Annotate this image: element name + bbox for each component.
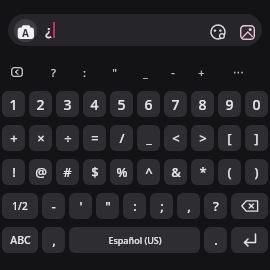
- button[interactable]: ,: [42, 227, 65, 253]
- button[interactable]: .: [204, 227, 227, 253]
- staticText: <: [172, 129, 180, 147]
- staticText: 6: [144, 95, 153, 114]
- button[interactable]: (: [218, 159, 241, 185]
- staticText: 1: [9, 95, 18, 114]
- staticText: 9: [225, 95, 234, 114]
- staticText: A: [22, 26, 29, 40]
- button[interactable]: 2: [29, 91, 52, 117]
- button[interactable]: ": [104, 59, 124, 85]
- button[interactable]: :: [123, 193, 146, 219]
- button[interactable]: 0: [245, 91, 268, 117]
- staticText: ^: [145, 163, 153, 181]
- button[interactable]: 7: [164, 91, 187, 117]
- button[interactable]: :: [74, 59, 94, 85]
- button[interactable]: A: [8, 14, 262, 46]
- button[interactable]: [: [218, 125, 241, 151]
- staticText: &: [171, 163, 181, 181]
- staticText: :: [83, 65, 86, 80]
- staticText: ": [112, 65, 117, 80]
- staticText: ⋯: [233, 66, 244, 79]
- button[interactable]: /: [110, 125, 133, 151]
- button[interactable]: ': [69, 193, 92, 219]
- button[interactable]: ?: [204, 193, 227, 219]
- button[interactable]: [210, 24, 226, 40]
- button[interactable]: _: [137, 125, 160, 151]
- staticText: =: [91, 129, 99, 147]
- staticText: ]: [254, 129, 259, 147]
- button[interactable]: 1/2: [2, 193, 38, 219]
- staticText: 7: [171, 95, 180, 114]
- button[interactable]: !: [2, 159, 25, 185]
- button[interactable]: &: [164, 159, 187, 185]
- button[interactable]: #: [56, 159, 79, 185]
- staticText: >: [199, 129, 207, 147]
- button[interactable]: [240, 25, 255, 40]
- staticText: 4: [90, 95, 99, 114]
- staticText: ,: [187, 197, 191, 215]
- button[interactable]: ;: [150, 193, 173, 219]
- button[interactable]: 9: [218, 91, 241, 117]
- button[interactable]: ,: [177, 193, 200, 219]
- button[interactable]: *: [191, 159, 214, 185]
- staticText: +: [198, 65, 205, 80]
- button[interactable]: [231, 193, 268, 219]
- button[interactable]: [11, 67, 23, 77]
- staticText: ×: [37, 129, 45, 147]
- button[interactable]: ): [245, 159, 268, 185]
- staticText: /: [119, 129, 125, 147]
- staticText: 1/2: [12, 199, 28, 213]
- staticText: :: [133, 197, 137, 215]
- staticText: 8: [198, 95, 207, 114]
- staticText: @: [35, 163, 47, 181]
- button[interactable]: +: [2, 125, 25, 151]
- button[interactable]: ×: [29, 125, 52, 151]
- staticText: 5: [117, 95, 126, 114]
- button[interactable]: -: [163, 59, 183, 85]
- button[interactable]: 8: [191, 91, 214, 117]
- button[interactable]: ": [96, 193, 119, 219]
- staticText: 2: [36, 95, 45, 114]
- staticText: *: [199, 163, 207, 181]
- button[interactable]: ]: [245, 125, 268, 151]
- button[interactable]: -: [42, 193, 65, 219]
- button[interactable]: 6: [137, 91, 160, 117]
- staticText: _: [143, 65, 148, 80]
- staticText: 3: [63, 95, 72, 114]
- staticText: ¿: [45, 21, 52, 40]
- staticText: ': [79, 197, 83, 215]
- button[interactable]: _: [135, 59, 155, 85]
- button[interactable]: ?: [43, 59, 63, 85]
- staticText: +: [10, 129, 18, 147]
- button[interactable]: Español (US): [69, 227, 200, 253]
- staticText: ABC: [10, 233, 31, 247]
- staticText: -: [171, 65, 175, 80]
- staticText: 0: [252, 95, 261, 114]
- staticText: -: [51, 197, 56, 215]
- staticText: .: [214, 231, 218, 249]
- staticText: $: [91, 163, 99, 181]
- button[interactable]: [231, 227, 268, 253]
- staticText: #: [63, 163, 72, 181]
- button[interactable]: $: [83, 159, 106, 185]
- staticText: ÷: [64, 129, 72, 147]
- button[interactable]: 4: [83, 91, 106, 117]
- button[interactable]: 5: [110, 91, 133, 117]
- button[interactable]: ^: [137, 159, 160, 185]
- button[interactable]: ⋯: [228, 59, 248, 85]
- staticText: [: [227, 129, 232, 147]
- staticText: _: [146, 129, 152, 147]
- button[interactable]: @: [29, 159, 52, 185]
- button[interactable]: +: [191, 59, 211, 85]
- button[interactable]: %: [110, 159, 133, 185]
- button[interactable]: ABC: [2, 227, 38, 253]
- button[interactable]: 1: [2, 91, 25, 117]
- staticText: ;: [160, 197, 164, 215]
- button[interactable]: A: [14, 19, 37, 42]
- button[interactable]: ÷: [56, 125, 79, 151]
- button[interactable]: >: [191, 125, 214, 151]
- button[interactable]: <: [164, 125, 187, 151]
- staticText: Español (US): [108, 234, 162, 246]
- staticText: (: [227, 163, 232, 181]
- button[interactable]: =: [83, 125, 106, 151]
- button[interactable]: 3: [56, 91, 79, 117]
